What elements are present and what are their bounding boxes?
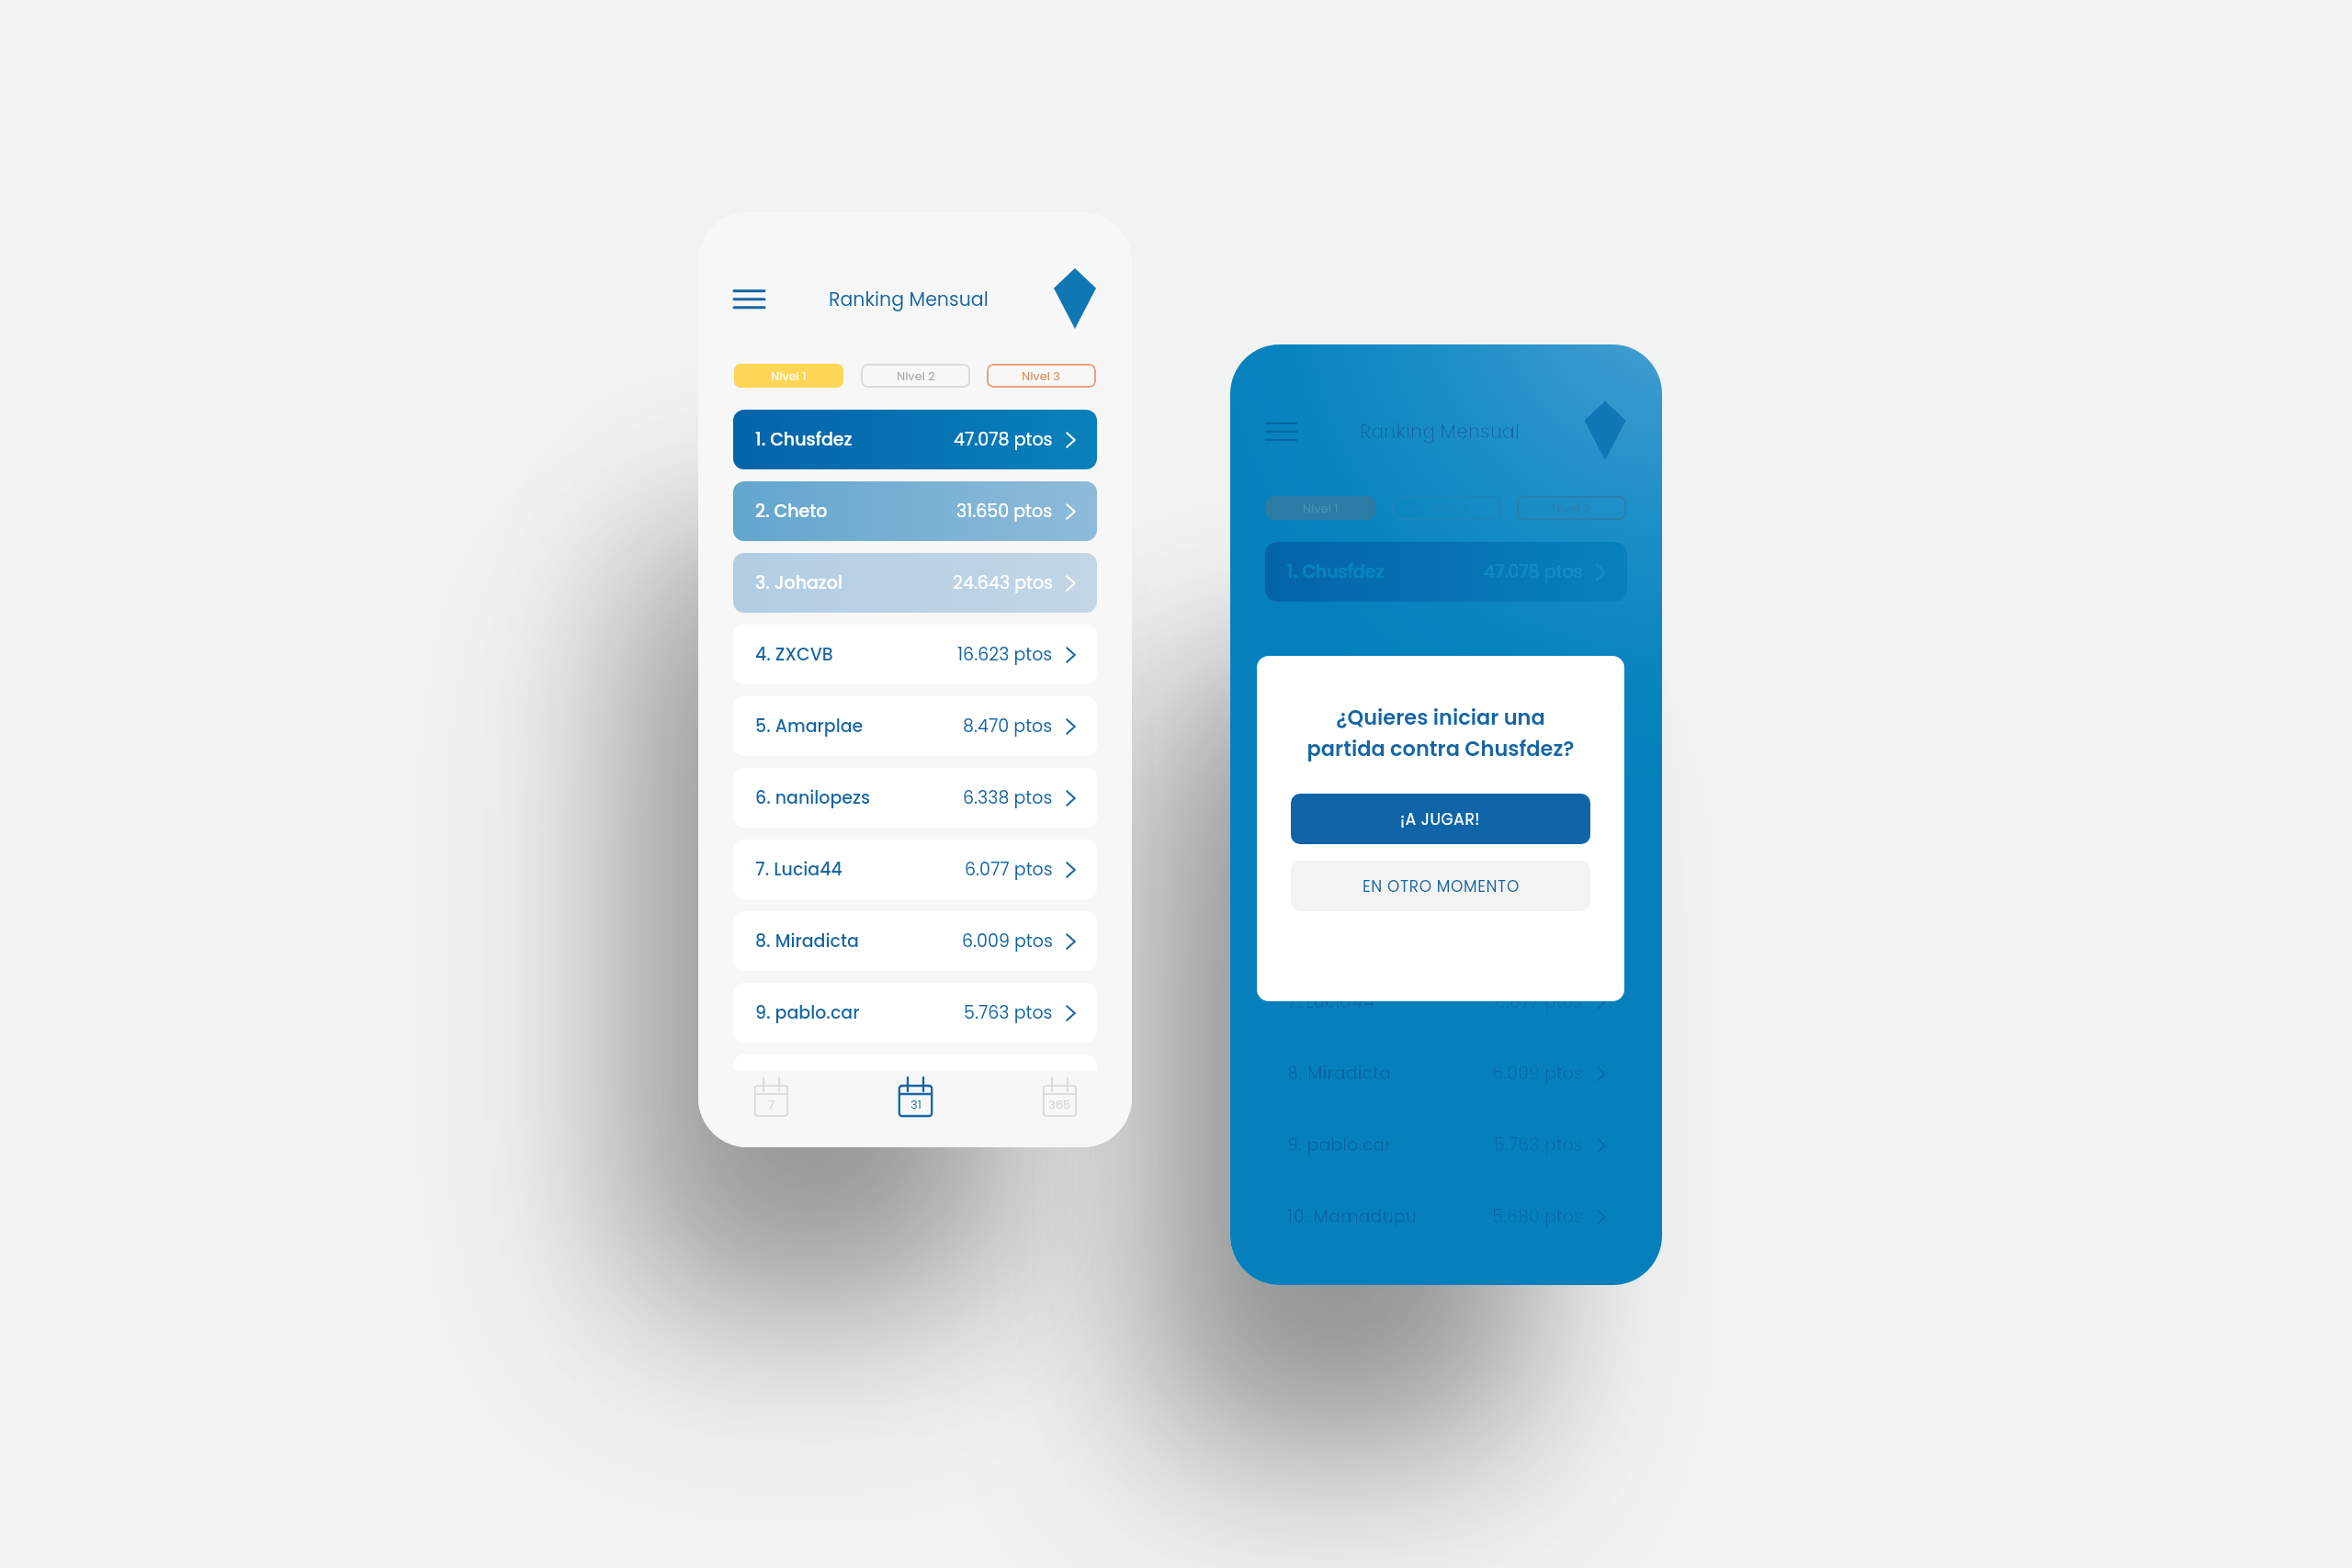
button[interactable]: 7. Lucia44 bbox=[733, 840, 1097, 899]
staticText: 6.338 ptos bbox=[963, 785, 1053, 810]
staticText: 8.470 ptos bbox=[963, 714, 1053, 739]
staticText: 7 bbox=[768, 1096, 775, 1112]
staticText: 9. pablo.car bbox=[755, 1000, 860, 1025]
button[interactable]: 3. Johazol bbox=[1265, 685, 1627, 745]
staticText: 24.643 ptos bbox=[953, 570, 1053, 595]
staticText: 6.009 ptos bbox=[1492, 1061, 1583, 1086]
button[interactable]: 4. ZXCVB bbox=[733, 625, 1097, 684]
staticText: Nivel 3 bbox=[1022, 367, 1061, 384]
staticText: 7. Lucia44 bbox=[755, 857, 842, 882]
staticText: EN OTRO MOMENTO bbox=[1363, 875, 1520, 897]
button[interactable]: Rango 7 bbox=[698, 1070, 843, 1122]
staticText: 7. Lucia44 bbox=[1287, 989, 1374, 1014]
staticText: 8.470 ptos bbox=[1493, 846, 1583, 871]
staticText: 8. Miradicta bbox=[755, 929, 859, 953]
button[interactable]: Nivel 1 bbox=[1266, 496, 1375, 520]
button[interactable]: 5. Amarplae bbox=[1265, 829, 1627, 888]
staticText: 5.680 ptos bbox=[1492, 1204, 1583, 1229]
staticText: 4. ZXCVB bbox=[1287, 774, 1365, 799]
button[interactable]: Rango 31 bbox=[843, 1070, 988, 1122]
staticText: Ranking Mensual bbox=[1360, 418, 1520, 445]
button[interactable]: 10. Mamadupu bbox=[733, 1055, 1097, 1114]
staticText: 9. pablo.car bbox=[1287, 1133, 1392, 1157]
button[interactable]: Nivel 2 bbox=[1392, 496, 1501, 520]
button[interactable]: 10. Mamadupu bbox=[1265, 1187, 1627, 1247]
button[interactable]: Menu bbox=[1265, 417, 1296, 445]
button[interactable]: ¡A JUGAR! bbox=[1291, 794, 1590, 844]
staticText: 47.078 ptos bbox=[954, 427, 1053, 452]
button[interactable]: Nivel 3 bbox=[987, 364, 1096, 388]
button[interactable]: Nivel 3 bbox=[1517, 496, 1626, 520]
staticText: 31.650 ptos bbox=[956, 499, 1053, 524]
button[interactable]: 4. ZXCVB bbox=[1265, 757, 1627, 817]
staticText: 5. Amarplae bbox=[1287, 846, 1396, 871]
button[interactable]: 1. Chusfdez bbox=[733, 410, 1097, 469]
button[interactable]: 3. Johazol bbox=[733, 553, 1097, 613]
staticText: 1. Chusfdez bbox=[1287, 559, 1385, 584]
button[interactable]: 2. Cheto bbox=[1265, 614, 1627, 673]
button[interactable]: 6. nanilopezs bbox=[733, 768, 1097, 828]
staticText: 24.643 ptos bbox=[1483, 703, 1583, 728]
staticText: 4. ZXCVB bbox=[755, 642, 833, 667]
staticText: ¿Quieres iniciar una partida contra Chus… bbox=[1291, 703, 1590, 763]
button[interactable]: Rango 365 bbox=[988, 1070, 1132, 1122]
staticText: Ranking Mensual bbox=[829, 286, 989, 312]
staticText: Nivel 1 bbox=[771, 367, 807, 384]
staticText: 6. nanilopezs bbox=[755, 785, 871, 810]
staticText: ¡A JUGAR! bbox=[1400, 808, 1481, 830]
button[interactable]: 1. Chusfdez bbox=[1265, 542, 1627, 602]
button[interactable]: 8. Miradicta bbox=[733, 911, 1097, 971]
staticText: 8. Miradicta bbox=[1287, 1061, 1391, 1086]
button[interactable]: 2. Cheto bbox=[733, 481, 1097, 541]
button[interactable]: 9. pablo.car bbox=[1265, 1115, 1627, 1175]
staticText: 1. Chusfdez bbox=[755, 427, 853, 452]
button[interactable]: 7. Lucia44 bbox=[1265, 972, 1627, 1032]
staticText: 6.077 ptos bbox=[1495, 989, 1583, 1014]
button[interactable]: Nivel 2 bbox=[861, 364, 970, 388]
button[interactable]: Menu bbox=[733, 285, 764, 312]
staticText: 31 bbox=[910, 1096, 922, 1112]
staticText: 5.680 ptos bbox=[962, 1072, 1053, 1097]
staticText: Nivel 3 bbox=[1552, 500, 1591, 516]
staticText: 10. Mamadupu bbox=[1287, 1204, 1418, 1229]
staticText: 16.623 ptos bbox=[1487, 774, 1583, 799]
staticText: Nivel 1 bbox=[1303, 500, 1339, 516]
staticText: 10. Mamadupu bbox=[755, 1072, 886, 1097]
staticText: Nivel 2 bbox=[897, 367, 935, 384]
staticText: 16.623 ptos bbox=[957, 642, 1053, 667]
staticText: 3. Johazol bbox=[755, 570, 842, 595]
button[interactable]: 8. Miradicta bbox=[1265, 1043, 1627, 1103]
staticText: 5.763 ptos bbox=[1494, 1133, 1583, 1157]
button[interactable]: EN OTRO MOMENTO bbox=[1291, 861, 1590, 911]
staticText: 6.009 ptos bbox=[962, 929, 1053, 953]
button[interactable]: 6. nanilopezs bbox=[1265, 900, 1627, 960]
button[interactable]: 9. pablo.car bbox=[733, 983, 1097, 1043]
staticText: 5.763 ptos bbox=[964, 1000, 1053, 1025]
button[interactable]: Nivel 1 bbox=[734, 364, 843, 388]
staticText: 47.078 ptos bbox=[1484, 559, 1583, 584]
staticText: 6.077 ptos bbox=[965, 857, 1053, 882]
button[interactable]: 5. Amarplae bbox=[733, 696, 1097, 756]
staticText: 2. Cheto bbox=[755, 499, 828, 524]
staticText: 5. Amarplae bbox=[755, 714, 864, 739]
staticText: 365 bbox=[1048, 1096, 1071, 1112]
staticText: 3. Johazol bbox=[1287, 703, 1374, 728]
